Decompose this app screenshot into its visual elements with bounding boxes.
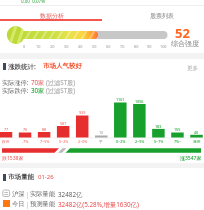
staticText: 涨停 [193, 139, 201, 144]
staticText: 更多 [187, 65, 198, 72]
staticText: (过滤ST股) [46, 78, 76, 86]
staticText: 7~5% [40, 139, 50, 144]
staticText: 5~2% [59, 139, 69, 144]
staticText: 2~0% [78, 139, 88, 144]
staticText: 实际跌停: [2, 86, 29, 94]
staticText: 股票列表 [150, 12, 174, 20]
staticText: 70 [120, 44, 125, 49]
button[interactable] [182, 63, 204, 73]
staticText: 涨跌统计: [8, 62, 36, 71]
button[interactable] [0, 198, 204, 208]
staticText: 2~5% [135, 139, 145, 144]
staticText: 30 [64, 44, 69, 49]
staticText: 市场量能 [8, 173, 34, 181]
staticText: 939 [79, 110, 86, 115]
staticText: 今日 [12, 200, 25, 208]
staticText: 10 [99, 130, 104, 135]
staticText: 预测量能 [30, 200, 56, 208]
staticText: 综合强度 [171, 39, 199, 48]
staticText: 平 [99, 139, 103, 144]
staticText: 80 [134, 44, 139, 49]
staticText: 90 [147, 44, 152, 49]
staticText: 587 [60, 121, 67, 126]
staticText: 涨3547家 [180, 155, 202, 162]
staticText: 0.00 0.07% [21, 0, 45, 4]
staticText: 0 [23, 44, 26, 49]
staticText: 32482亿 [58, 190, 83, 199]
staticText: 1056 [135, 99, 144, 104]
staticText: 76 [23, 127, 28, 132]
staticText: 88 [42, 127, 47, 132]
staticText: 0~2% [116, 139, 126, 144]
staticText: 100 [160, 44, 167, 49]
staticText: 183 [155, 124, 162, 129]
staticText: (过滤ST股) [46, 86, 76, 94]
staticText: 10 [36, 44, 41, 49]
staticText: 77 [4, 127, 9, 132]
staticText: 40 [78, 44, 83, 49]
staticText: 32482亿(5.28%,增量1630亿) [58, 200, 139, 209]
staticText: 155 [174, 127, 181, 132]
staticText: 52 [175, 24, 190, 42]
staticText: 1161 [116, 97, 125, 102]
button[interactable] [0, 5, 102, 19]
staticText: 市场人气较好 [43, 62, 82, 70]
staticText: 数据分析 [40, 12, 64, 20]
staticText: 60 [106, 44, 111, 49]
staticText: 跌1538家 [2, 155, 24, 162]
staticText: 01-26 [38, 173, 54, 181]
button[interactable] [102, 5, 204, 19]
staticText: 50 [92, 44, 97, 49]
staticText: 20 [50, 44, 55, 49]
staticText: | [26, 200, 30, 209]
staticText: 跌停 [2, 139, 10, 144]
staticText: 5~7% [154, 139, 164, 144]
staticText: 40 [194, 130, 199, 135]
staticText: 实际涨停: [2, 78, 29, 86]
button[interactable] [0, 187, 204, 197]
staticText: | [26, 190, 30, 199]
staticText: 实际量能 [30, 190, 56, 198]
staticText: 30家 [31, 86, 45, 94]
staticText: 70家 [31, 78, 45, 86]
staticText: -7% [22, 139, 29, 144]
staticText: 7%~ [174, 139, 182, 144]
staticText: 沪深 [12, 190, 25, 198]
